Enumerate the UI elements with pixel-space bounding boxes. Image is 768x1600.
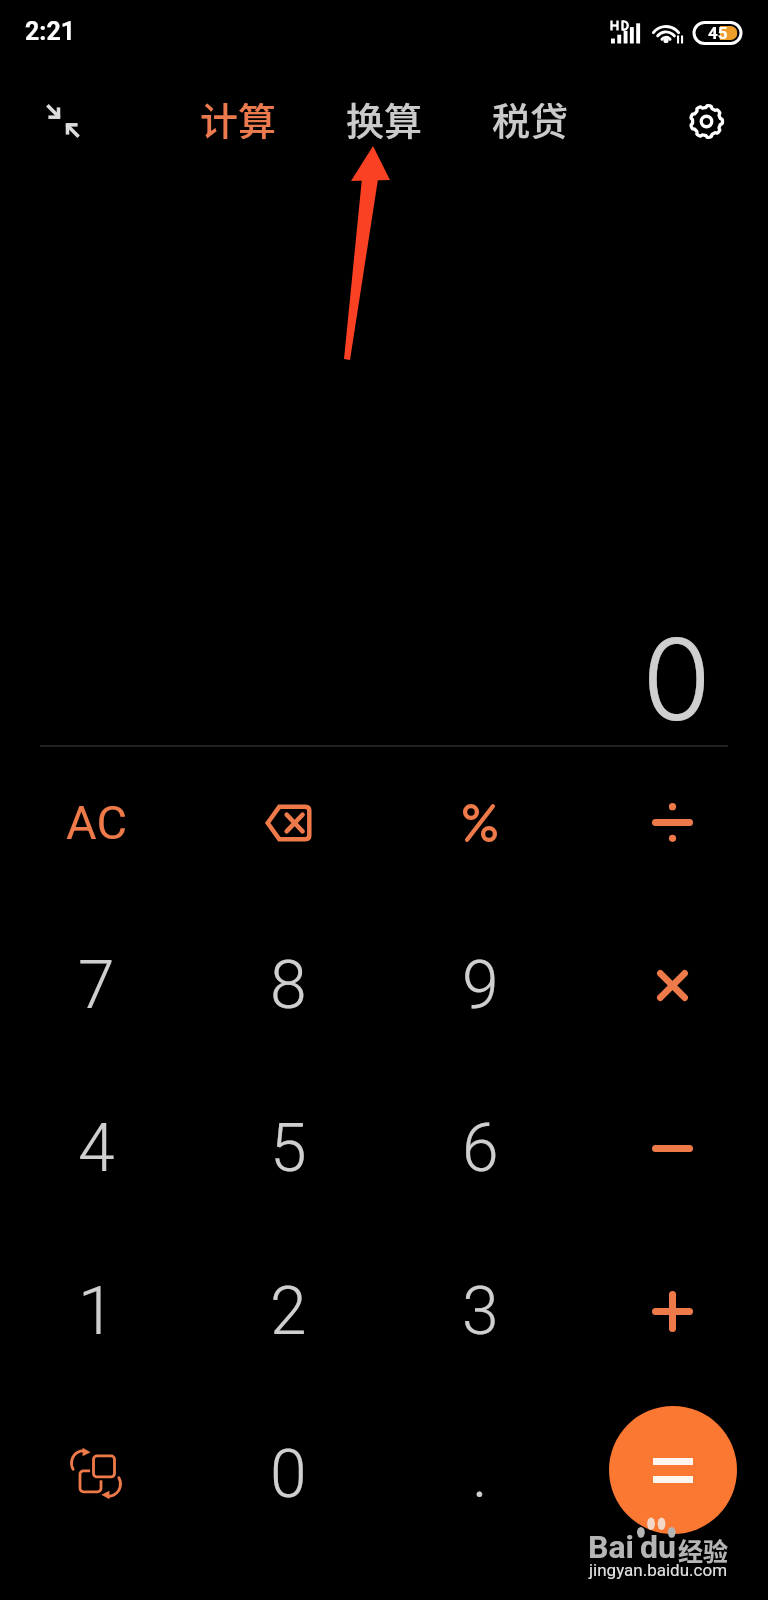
button[interactable]: 换算	[318, 79, 450, 157]
staticText: 2:21	[25, 17, 76, 46]
button[interactable]: 9	[384, 904, 576, 1067]
button[interactable]: Divide	[576, 741, 768, 904]
staticText: 6	[462, 1110, 499, 1187]
button[interactable]: 0	[192, 1393, 384, 1556]
button[interactable]: 计算	[172, 79, 304, 157]
button[interactable]: Percent	[384, 741, 576, 904]
staticText: AC	[66, 795, 127, 850]
staticText: jingyan.baidu.com	[589, 1560, 728, 1580]
button[interactable]: AC	[0, 741, 192, 904]
button[interactable]: 6	[384, 1067, 576, 1230]
button[interactable]: Equals	[609, 1406, 737, 1534]
staticText: 3	[462, 1273, 499, 1350]
staticText: Bai	[588, 1528, 635, 1566]
button[interactable]: 5	[192, 1067, 384, 1230]
staticText: 换算	[346, 91, 423, 146]
button[interactable]: Minus	[576, 1067, 768, 1230]
staticText: 税贷	[492, 91, 569, 146]
button[interactable]: Multiply	[576, 904, 768, 1067]
button[interactable]: Collapse	[24, 82, 102, 160]
button[interactable]: 1	[0, 1230, 192, 1393]
button[interactable]: 2	[192, 1230, 384, 1393]
staticText: 0	[642, 611, 712, 747]
staticText: 45	[708, 23, 728, 43]
staticText: 计算	[200, 91, 277, 146]
button[interactable]: 7	[0, 904, 192, 1067]
staticText: 9	[462, 947, 499, 1024]
staticText: 7	[78, 947, 115, 1024]
button[interactable]: Settings	[667, 82, 745, 160]
staticText: .	[472, 1436, 488, 1513]
button[interactable]: Plus	[576, 1230, 768, 1393]
staticText: 0	[270, 1436, 307, 1513]
button[interactable]: Backspace	[192, 741, 384, 904]
button[interactable]: 8	[192, 904, 384, 1067]
button[interactable]: 4	[0, 1067, 192, 1230]
staticText: 5	[270, 1110, 307, 1187]
staticText: 1	[78, 1273, 115, 1350]
button[interactable]: Convert	[0, 1393, 192, 1556]
staticText: 2	[270, 1273, 307, 1350]
staticText: 8	[270, 947, 307, 1024]
staticText: 经验	[678, 1532, 729, 1568]
staticText: 4	[78, 1110, 115, 1187]
staticText: du	[640, 1528, 676, 1566]
button[interactable]: .	[384, 1393, 576, 1556]
button[interactable]: 税贷	[464, 79, 596, 157]
button[interactable]: 3	[384, 1230, 576, 1393]
